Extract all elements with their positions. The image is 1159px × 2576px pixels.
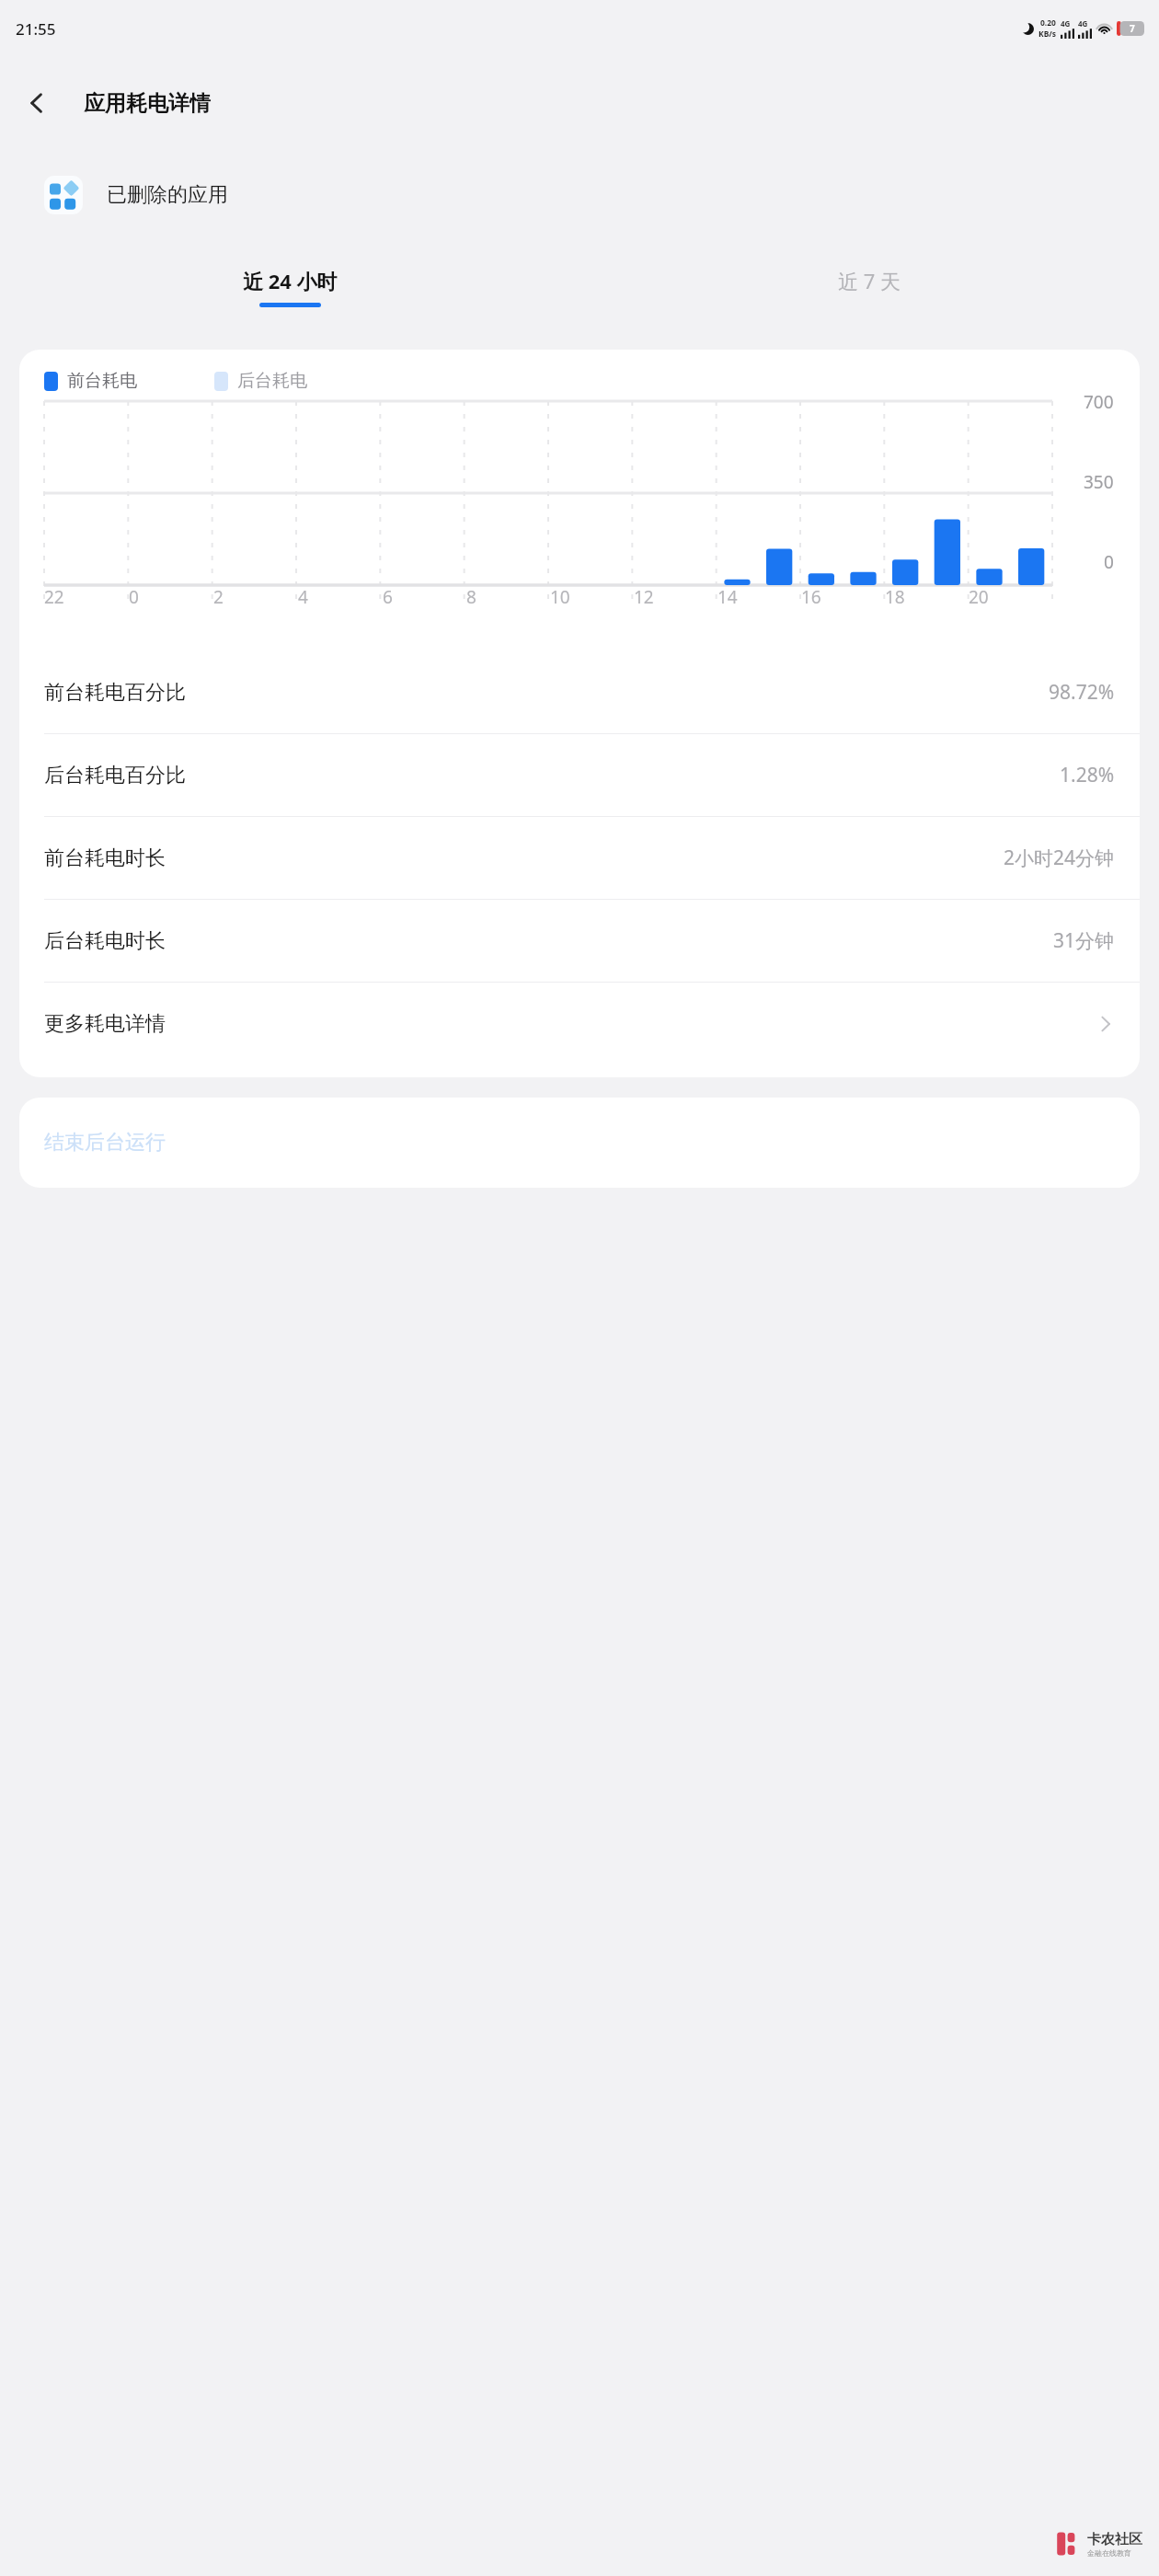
staticText: 近 24 小时 bbox=[243, 267, 338, 294]
staticText: 结束后台运行 bbox=[44, 1130, 166, 1156]
button[interactable]: 前台耗电时长 bbox=[19, 817, 1140, 899]
staticText: 1.28% bbox=[1060, 762, 1115, 788]
staticText: 2 bbox=[213, 585, 224, 609]
staticText: 应用耗电详情 bbox=[84, 90, 211, 117]
staticText: 8 bbox=[466, 585, 476, 609]
staticText: KB/s bbox=[1039, 29, 1057, 40]
button[interactable]: 后台耗电时长 bbox=[19, 900, 1140, 982]
staticText: 后台耗电百分比 bbox=[44, 763, 186, 788]
staticText: 18 bbox=[885, 585, 905, 609]
staticText: 0.20 bbox=[1040, 17, 1056, 29]
staticText: 14 bbox=[717, 585, 738, 609]
staticText: 2小时24分钟 bbox=[1004, 845, 1115, 871]
staticText: 21:55 bbox=[16, 18, 56, 40]
staticText: 31分钟 bbox=[1053, 927, 1115, 954]
staticText: 22 bbox=[44, 585, 64, 609]
staticText: 350 bbox=[1084, 470, 1114, 494]
button[interactable]: 后台耗电百分比 bbox=[19, 734, 1140, 816]
staticText: 20 bbox=[969, 585, 989, 609]
button[interactable]: 前台耗电百分比 bbox=[19, 651, 1140, 733]
staticText: 后台耗电时长 bbox=[44, 928, 166, 954]
staticText: 已删除的应用 bbox=[107, 182, 228, 208]
staticText: 0 bbox=[129, 585, 139, 609]
staticText: 16 bbox=[801, 585, 821, 609]
staticText: 98.72% bbox=[1049, 679, 1115, 706]
button[interactable]: 近 24 小时 bbox=[0, 241, 579, 333]
staticText: 4G bbox=[1061, 18, 1071, 29]
staticText: 前台耗电百分比 bbox=[44, 680, 186, 706]
staticText: 前台耗电 bbox=[67, 370, 137, 392]
staticText: 4G bbox=[1078, 18, 1088, 29]
staticText: 12 bbox=[634, 585, 654, 609]
staticText: 后台耗电 bbox=[237, 370, 307, 392]
staticText: 0 bbox=[1104, 550, 1114, 574]
staticText: 10 bbox=[550, 585, 570, 609]
staticText: 6 bbox=[383, 585, 393, 609]
button[interactable]: Back bbox=[13, 79, 61, 127]
staticText: 4 bbox=[298, 585, 308, 609]
staticText: 7 bbox=[1130, 22, 1135, 35]
button[interactable]: 更多耗电详情 bbox=[19, 983, 1140, 1064]
staticText: 更多耗电详情 bbox=[44, 1011, 166, 1037]
button[interactable]: 结束后台运行 bbox=[19, 1098, 1140, 1188]
staticText: 近 7 天 bbox=[838, 267, 901, 294]
staticText: 金融在线教育 bbox=[1087, 2548, 1131, 2558]
staticText: 700 bbox=[1084, 390, 1114, 414]
button[interactable]: 近 7 天 bbox=[579, 241, 1159, 333]
staticText: 前台耗电时长 bbox=[44, 845, 166, 871]
staticText: 卡农社区 bbox=[1087, 2531, 1142, 2548]
